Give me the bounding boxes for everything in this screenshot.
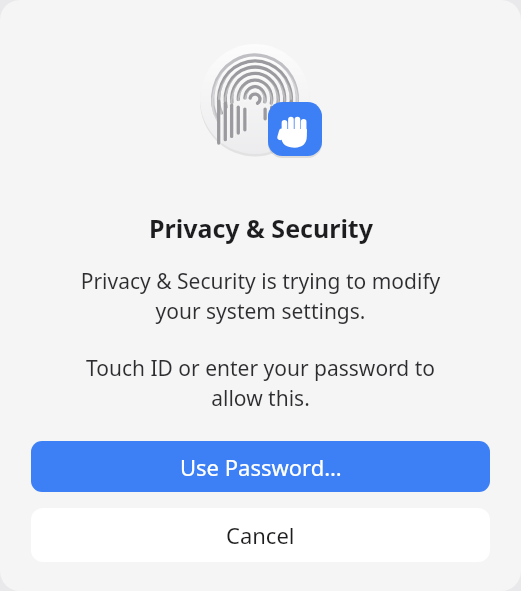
staticText: Privacy & Security	[149, 211, 373, 245]
staticText: Cancel	[226, 520, 295, 550]
button[interactable]: Cancel	[31, 508, 490, 562]
staticText: Privacy & Security is trying to modify y…	[22, 267, 499, 325]
staticText: Use Password…	[180, 452, 342, 482]
button[interactable]: Use Password…	[31, 441, 490, 492]
other: Touch ID privacy	[200, 44, 322, 156]
staticText: Touch ID or enter your password to allow…	[22, 354, 499, 412]
